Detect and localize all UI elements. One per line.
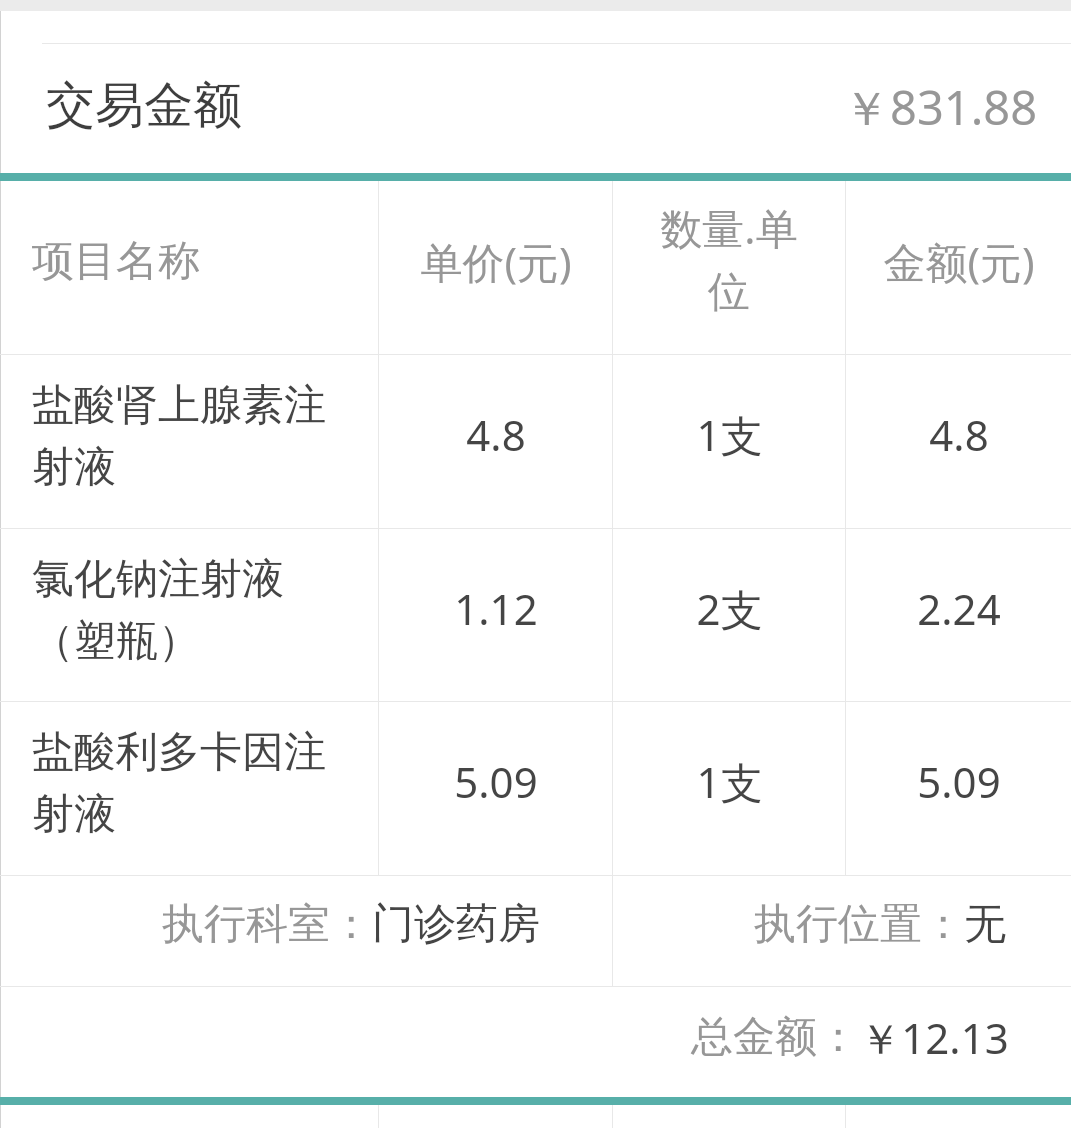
staticText: 执行科室： <box>162 898 372 951</box>
staticText: 1支 <box>696 406 763 463</box>
staticText: 1支 <box>696 753 763 810</box>
staticText: 交易金额 <box>46 75 242 137</box>
button[interactable]: 交易金额 <box>0 44 1071 173</box>
staticText: 数量.单位 <box>655 199 803 319</box>
staticText: 4.8 <box>929 406 989 463</box>
button[interactable]: 执行科室： <box>0 876 612 986</box>
button[interactable]: 盐酸利多卡因注射液 <box>0 702 1071 875</box>
staticText: 门诊药房 <box>372 898 540 951</box>
staticText: 2.24 <box>917 580 1001 637</box>
staticText: 2支 <box>696 580 763 637</box>
staticText: ￥12.13 <box>859 1009 1009 1066</box>
staticText: 总金额： <box>691 1011 859 1064</box>
staticText: 无 <box>964 898 1006 951</box>
staticText: 5.09 <box>454 753 538 810</box>
staticText: 单价(元) <box>420 233 572 290</box>
staticText: 项目名称 <box>32 235 200 288</box>
staticText: 1.12 <box>454 580 538 637</box>
staticText: 执行位置： <box>754 898 964 951</box>
button[interactable]: 执行位置： <box>613 876 1071 986</box>
staticText: ￥831.88 <box>843 75 1038 139</box>
button[interactable]: 总金额： <box>0 987 1071 1097</box>
staticText: 4.8 <box>466 406 526 463</box>
staticText: 金额(元) <box>883 233 1035 290</box>
button[interactable]: 盐酸肾上腺素注射液 <box>0 355 1071 528</box>
staticText: 盐酸利多卡因注射液 <box>32 726 364 841</box>
staticText: 5.09 <box>917 753 1001 810</box>
staticText: 盐酸肾上腺素注射液 <box>32 379 364 494</box>
button[interactable]: 氯化钠注射液（塑瓶） <box>0 529 1071 701</box>
staticText: 氯化钠注射液（塑瓶） <box>32 553 364 668</box>
